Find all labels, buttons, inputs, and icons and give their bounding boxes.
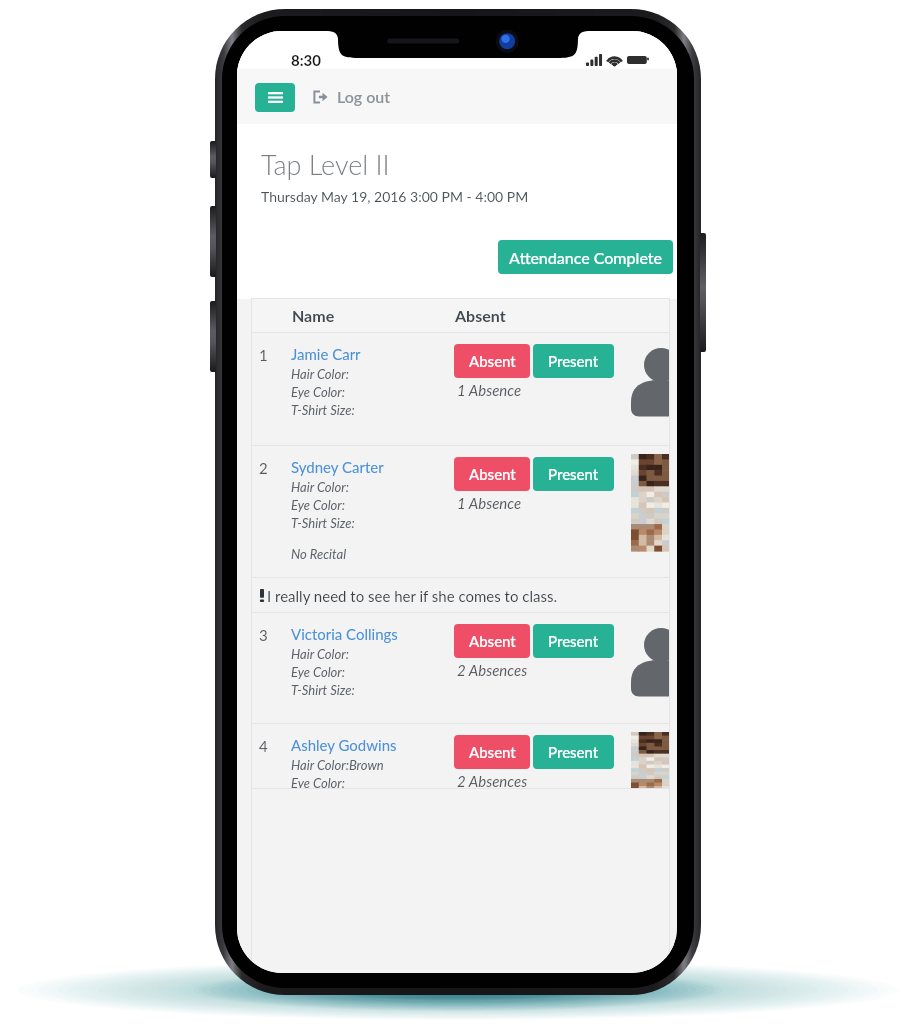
staticText: Eye Color: — [291, 664, 346, 680]
staticText: Eye Color: — [291, 775, 346, 789]
button[interactable]: Absent — [454, 624, 530, 658]
button[interactable]: Present — [533, 344, 614, 378]
button[interactable]: Menu — [255, 83, 295, 112]
staticText: Hair Color:Brown — [291, 757, 384, 773]
staticText: 3 — [259, 626, 268, 644]
staticText: Present — [548, 632, 599, 650]
button[interactable]: Jamie Carr — [291, 345, 361, 363]
staticText: Present — [548, 743, 599, 761]
button[interactable]: Present — [533, 457, 614, 491]
staticText: Attendance Complete — [509, 248, 663, 267]
staticText: T-Shirt Size: — [291, 515, 355, 531]
staticText: 2 — [259, 459, 268, 477]
staticText: T-Shirt Size: — [291, 682, 355, 698]
staticText: 2 Absences — [457, 772, 528, 789]
staticText: Present — [548, 465, 599, 483]
staticText: Hair Color: — [291, 479, 349, 495]
staticText: Log out — [337, 87, 391, 106]
button[interactable]: Absent — [454, 344, 530, 378]
button[interactable]: 3 — [252, 613, 670, 724]
staticText: Tap Level II — [261, 148, 390, 180]
staticText: I really need to see her if she comes to… — [267, 587, 557, 605]
button[interactable]: 4 — [252, 724, 670, 789]
button[interactable]: Absent — [454, 457, 530, 491]
staticText: 4 — [259, 737, 268, 755]
staticText: Absent — [469, 465, 516, 483]
button[interactable]: Ashley Godwins — [291, 736, 397, 754]
staticText: Hair Color: — [291, 366, 349, 382]
button[interactable]: I really need to see her if she comes to… — [252, 578, 670, 613]
button[interactable]: 2 — [252, 446, 670, 578]
staticText: Absent — [469, 743, 516, 761]
staticText: Eye Color: — [291, 384, 346, 400]
staticText: Absent — [455, 306, 506, 325]
staticText: Name — [292, 306, 335, 325]
button[interactable]: Present — [533, 624, 614, 658]
button[interactable]: Log out — [313, 87, 391, 106]
staticText: Thursday May 19, 2016 3:00 PM - 4:00 PM — [261, 188, 529, 205]
staticText: 2 Absences — [457, 661, 528, 679]
button[interactable]: Sydney Carter — [291, 458, 384, 476]
button[interactable]: Victoria Collings — [291, 625, 398, 643]
button[interactable]: Present — [533, 735, 614, 769]
staticText: No Recital — [291, 546, 347, 562]
staticText: Eye Color: — [291, 497, 346, 513]
button[interactable]: Absent — [454, 735, 530, 769]
button[interactable]: 1 — [252, 333, 670, 446]
staticText: Hair Color: — [291, 646, 349, 662]
staticText: Present — [548, 352, 599, 370]
staticText: 1 Absence — [457, 494, 522, 512]
button[interactable]: Attendance Complete — [498, 240, 673, 274]
staticText: 8:30 — [291, 51, 321, 69]
staticText: 1 — [259, 346, 268, 364]
staticText: T-Shirt Size: — [291, 402, 355, 418]
staticText: Absent — [469, 352, 516, 370]
staticText: 1 Absence — [457, 381, 522, 399]
staticText: Absent — [469, 632, 516, 650]
